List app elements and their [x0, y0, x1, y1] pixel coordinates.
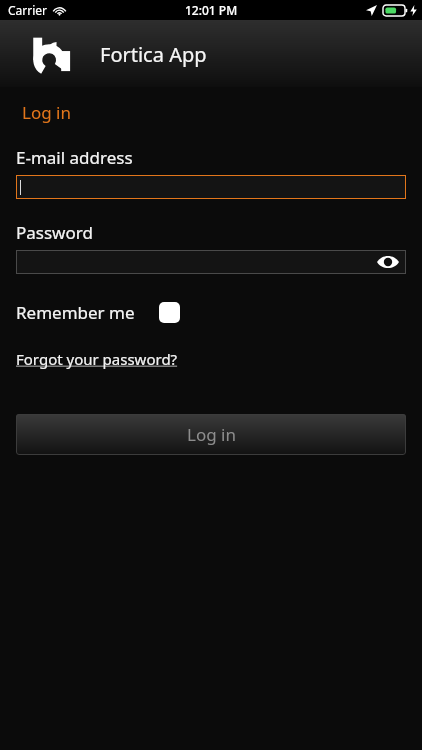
staticText: E-mail address	[16, 146, 133, 169]
staticText: Fortica App	[100, 41, 207, 68]
staticText: Log in	[187, 423, 236, 446]
button[interactable]: Forgot your password?	[16, 349, 178, 369]
staticText: Carrier	[8, 2, 48, 18]
button[interactable]: Remember me	[16, 301, 180, 324]
button[interactable]: Log in	[16, 414, 406, 455]
staticText: 12:01 PM	[185, 2, 238, 18]
button[interactable]: Show password	[16, 250, 406, 274]
staticText: Forgot your password?	[16, 349, 178, 369]
button[interactable]: Show password	[376, 252, 400, 272]
staticText: Remember me	[16, 301, 135, 324]
staticText: Password	[16, 221, 93, 244]
button[interactable]	[16, 175, 406, 199]
staticText: Log in	[22, 101, 71, 124]
